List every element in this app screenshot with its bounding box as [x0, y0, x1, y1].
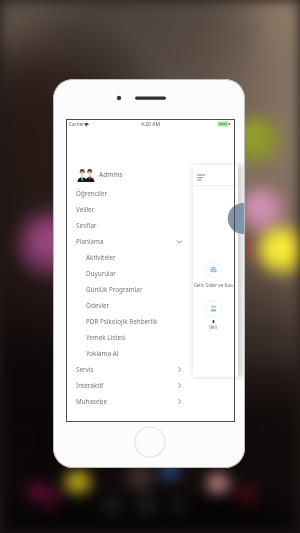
staticText: Muhasebe — [76, 397, 108, 406]
button[interactable]: Veliler — [66, 201, 235, 217]
staticText: İnteraktif — [76, 381, 104, 390]
staticText: PDR Psikolojik Rehberlik — [86, 317, 158, 326]
staticText: Aktiviteler — [86, 253, 116, 262]
staticText: Öğrenciler — [76, 189, 108, 198]
button[interactable]: Öğrenciler — [66, 185, 235, 201]
button[interactable]: Duyurular — [66, 265, 235, 281]
staticText: Servis — [76, 365, 94, 374]
staticText: Yoklama Al — [86, 349, 119, 358]
button[interactable]: Menu — [197, 174, 205, 181]
button[interactable]: PDR Psikolojik Rehberlik — [66, 313, 235, 329]
staticText: Planlama — [76, 237, 104, 246]
button[interactable]: Veli — [193, 300, 233, 330]
staticText: Duyurular — [86, 269, 116, 278]
staticText: Veli — [209, 324, 217, 330]
button[interactable]: Yemek Listesi — [66, 329, 235, 345]
button[interactable]: Yoklama Al — [66, 345, 235, 361]
button[interactable]: Servis — [66, 361, 235, 377]
button[interactable]: Ödevler — [66, 297, 235, 313]
button[interactable]: Gelir, Gider ve Kasa — [193, 261, 233, 288]
staticText: Carrier — [69, 121, 84, 127]
staticText: Günlük Programlar — [86, 285, 143, 294]
staticText: Ödevler — [86, 301, 110, 310]
staticText: Yemek Listesi — [86, 333, 126, 342]
button[interactable]: Planlama — [66, 233, 235, 249]
button[interactable]: İnteraktif — [66, 377, 235, 393]
button[interactable]: Aktiviteler — [66, 249, 235, 265]
staticText: Veliler — [76, 205, 95, 214]
staticText: 4:20 AM — [141, 121, 160, 128]
staticText: Sınıflar — [76, 221, 97, 230]
button[interactable]: Admins — [77, 166, 123, 182]
staticText: Admins — [99, 170, 123, 179]
button[interactable]: Sınıflar — [66, 217, 235, 233]
staticText: Gelir, Gider ve Kasa — [193, 282, 233, 288]
button[interactable]: Günlük Programlar — [66, 281, 235, 297]
button[interactable]: Muhasebe — [66, 393, 235, 409]
